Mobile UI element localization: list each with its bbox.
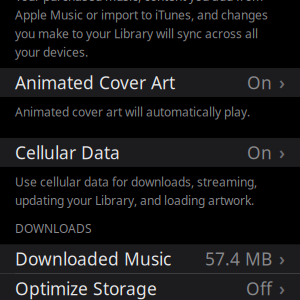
staticText: On [247,71,272,94]
staticText: › [279,277,285,300]
staticText: › [279,71,285,94]
staticText: Animated Cover Art [15,71,175,94]
button[interactable]: Optimize Storage [0,274,300,300]
staticText: DOWNLOADS [15,220,92,236]
staticText: › [279,247,285,270]
staticText: Downloaded Music [15,247,171,270]
button[interactable]: Animated Cover Art [0,68,300,97]
staticText: Your purchased music, content you add fr… [15,0,268,60]
button[interactable]: Cellular Data [0,138,300,167]
button[interactable]: Downloaded Music [0,244,300,273]
staticText: Animated cover art will automatically pl… [15,104,250,120]
staticText: › [279,141,285,164]
staticText: 57.4 MB [205,247,272,270]
staticText: Cellular Data [15,141,120,164]
staticText: On [247,141,272,164]
staticText: Use cellular data for downloads, streami… [15,174,257,208]
staticText: Off [246,277,272,300]
staticText: Optimize Storage [15,277,157,300]
